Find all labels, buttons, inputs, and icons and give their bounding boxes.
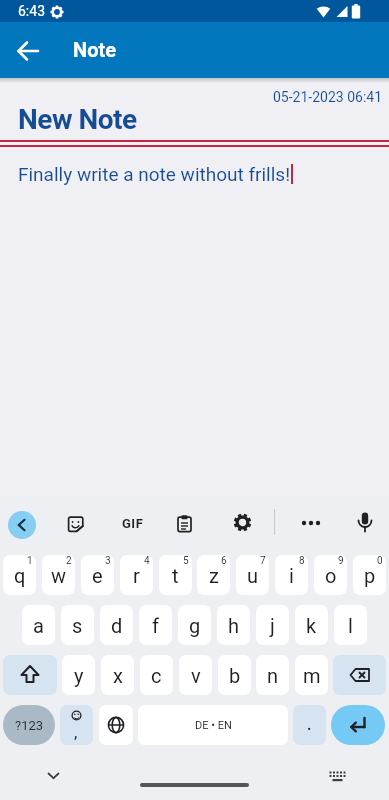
button[interactable]: c <box>140 655 173 695</box>
staticText: v <box>191 664 201 687</box>
button[interactable]: f <box>139 605 172 645</box>
staticText: 6 <box>221 555 227 567</box>
staticText: a <box>33 614 44 637</box>
button[interactable]: y <box>62 655 95 695</box>
button[interactable] <box>99 705 133 745</box>
button[interactable] <box>352 509 377 537</box>
button[interactable] <box>333 655 386 695</box>
staticText: 6:43 <box>18 3 45 19</box>
staticText: p <box>364 564 376 587</box>
staticText: GIF <box>122 516 144 531</box>
staticText: e <box>92 564 103 587</box>
button[interactable]: DE • EN <box>138 705 288 745</box>
staticText: 0 <box>377 555 383 567</box>
staticText: s <box>72 614 83 637</box>
staticText: o <box>325 564 337 587</box>
staticText: d <box>111 614 123 637</box>
staticText: j <box>270 614 275 637</box>
staticText: ?123 <box>15 718 44 733</box>
button[interactable]: x <box>101 655 134 695</box>
button[interactable]: l <box>334 605 367 645</box>
staticText: 4 <box>144 555 150 567</box>
button[interactable]: j <box>256 605 289 645</box>
staticText: New Note <box>18 103 137 136</box>
button[interactable]: v <box>179 655 212 695</box>
button[interactable] <box>8 31 48 71</box>
staticText: 3 <box>105 555 111 567</box>
staticText: 7 <box>260 555 266 567</box>
staticText: m <box>303 664 321 687</box>
button[interactable]: w <box>42 555 75 595</box>
button[interactable] <box>172 511 196 535</box>
button[interactable] <box>3 655 57 695</box>
button[interactable]: u <box>236 555 269 595</box>
button[interactable] <box>298 511 323 535</box>
staticText: , <box>74 722 78 742</box>
button[interactable]: s <box>61 605 94 645</box>
button[interactable] <box>64 513 88 537</box>
staticText: k <box>306 614 317 637</box>
staticText: c <box>151 664 162 687</box>
staticText: b <box>229 664 241 687</box>
button[interactable]: n <box>256 655 289 695</box>
staticText: 1 <box>27 555 33 567</box>
staticText: t <box>172 564 179 587</box>
button[interactable]: r <box>120 555 153 595</box>
staticText: i <box>289 564 294 587</box>
button[interactable]: ?123 <box>3 705 55 745</box>
button[interactable] <box>40 764 66 788</box>
button[interactable]: h <box>217 605 250 645</box>
staticText: y <box>74 664 84 687</box>
button[interactable]: z <box>197 555 230 595</box>
button[interactable]: g <box>178 605 211 645</box>
staticText: z <box>209 564 219 587</box>
button[interactable] <box>8 511 36 539</box>
staticText: l <box>348 614 353 637</box>
button[interactable]: , <box>60 705 93 745</box>
button[interactable]: p <box>353 555 386 595</box>
button[interactable]: GIF <box>118 511 148 535</box>
button[interactable] <box>230 510 255 535</box>
staticText: f <box>152 614 159 637</box>
staticText: h <box>228 614 240 637</box>
staticText: Finally write a note without frills! <box>18 163 291 185</box>
staticText: . <box>307 716 312 734</box>
button[interactable]: t <box>159 555 192 595</box>
staticText: n <box>267 664 279 687</box>
staticText: u <box>247 564 259 587</box>
button[interactable]: b <box>218 655 251 695</box>
staticText: 05-21-2023 06:41 <box>273 89 383 105</box>
button[interactable]: d <box>100 605 133 645</box>
staticText: 8 <box>299 555 305 567</box>
button[interactable]: o <box>314 555 347 595</box>
staticText: 9 <box>338 555 344 567</box>
button[interactable]: m <box>295 655 328 695</box>
button[interactable]: a <box>22 605 55 645</box>
staticText: DE • EN <box>195 719 232 732</box>
staticText: w <box>51 564 67 587</box>
button[interactable]: . <box>293 705 326 745</box>
staticText: q <box>14 564 26 587</box>
staticText: g <box>189 614 201 637</box>
button[interactable]: i <box>275 555 308 595</box>
button[interactable] <box>325 766 349 788</box>
staticText: 2 <box>66 555 72 567</box>
staticText: r <box>133 564 140 587</box>
button[interactable]: e <box>81 555 114 595</box>
staticText: x <box>113 664 123 687</box>
button[interactable]: k <box>295 605 328 645</box>
staticText: Note <box>73 38 117 61</box>
button[interactable]: q <box>3 555 36 595</box>
button[interactable] <box>331 705 385 745</box>
staticText: 5 <box>183 555 189 567</box>
